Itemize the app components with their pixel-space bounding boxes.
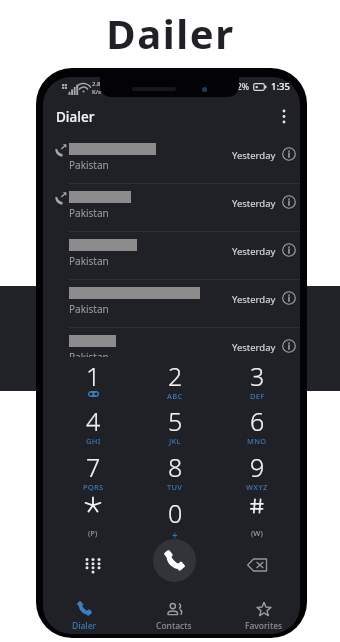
staticText: Yesterday <box>232 197 276 210</box>
staticText: PQRS <box>83 482 104 492</box>
staticText: 2% <box>237 81 250 93</box>
staticText: 5 <box>168 404 183 438</box>
button[interactable]: Dialer <box>43 590 126 634</box>
staticText: Contacts <box>156 620 192 632</box>
button[interactable]: 2 <box>135 361 215 407</box>
staticText: Dialer <box>72 620 97 632</box>
staticText: Yesterday <box>232 149 276 162</box>
button[interactable]: 1 <box>53 361 133 407</box>
button[interactable]: More options <box>268 97 300 136</box>
staticText: 8 <box>168 450 183 484</box>
staticText: (W) <box>251 528 263 538</box>
staticText: JKL <box>169 436 181 446</box>
staticText: K/s <box>92 88 101 96</box>
staticText: DEF <box>250 391 265 401</box>
staticText: 3 <box>250 359 265 393</box>
staticText: 6 <box>250 404 265 438</box>
staticText: 0 <box>168 496 183 530</box>
staticText: WXYZ <box>246 482 268 492</box>
staticText: + <box>172 528 178 542</box>
button[interactable]: 9 <box>217 452 297 498</box>
button[interactable]: (W) <box>217 498 297 544</box>
button[interactable]: Call details <box>282 339 296 353</box>
button[interactable]: 7 <box>53 452 133 498</box>
button[interactable]: Contacts <box>132 590 216 634</box>
staticText: Pakistan <box>69 350 109 358</box>
button[interactable]: Pakistan <box>43 327 300 358</box>
button[interactable]: 3 <box>217 361 297 407</box>
staticText: 7 <box>86 450 101 484</box>
staticText: Yesterday <box>232 293 276 306</box>
staticText: TUV <box>167 482 183 492</box>
button[interactable]: Pakistan <box>43 183 300 231</box>
staticText: Dialer <box>56 108 95 126</box>
button[interactable]: Pakistan <box>43 279 300 327</box>
staticText: Dailer <box>106 6 235 60</box>
staticText: 2.8 <box>92 80 101 88</box>
button[interactable]: Call details <box>282 195 296 209</box>
staticText: 1 <box>86 359 101 393</box>
button[interactable]: 4 <box>53 406 133 452</box>
staticText: ABC <box>167 391 183 401</box>
button[interactable]: Call details <box>282 291 296 305</box>
button[interactable]: (P) <box>53 498 133 544</box>
button[interactable]: Call details <box>282 243 296 257</box>
button[interactable]: Call details <box>282 147 296 161</box>
staticText: GHI <box>86 436 101 446</box>
staticText: Pakistan <box>69 206 109 220</box>
button[interactable]: 0 <box>135 498 215 544</box>
staticText: MNO <box>247 436 267 446</box>
button[interactable]: Show keypad <box>53 540 133 590</box>
staticText: (P) <box>88 528 98 538</box>
button[interactable]: Call <box>153 539 196 582</box>
button[interactable]: 6 <box>217 406 297 452</box>
staticText: Pakistan <box>69 158 109 172</box>
staticText: 1:35 <box>271 80 290 93</box>
staticText: Pakistan <box>69 254 109 268</box>
staticText: 9 <box>250 450 265 484</box>
button[interactable]: Favorites <box>222 590 300 634</box>
button[interactable]: Backspace <box>217 540 297 590</box>
staticText: Pakistan <box>69 302 109 316</box>
button[interactable]: 5 <box>135 406 215 452</box>
button[interactable]: Pakistan <box>43 135 300 183</box>
staticText: 2 <box>168 359 183 393</box>
staticText: 4 <box>86 404 101 438</box>
staticText: Yesterday <box>232 245 276 258</box>
staticText: Favorites <box>245 620 283 632</box>
button[interactable]: 8 <box>135 452 215 498</box>
button[interactable]: Pakistan <box>43 231 300 279</box>
staticText: Yesterday <box>232 341 276 354</box>
